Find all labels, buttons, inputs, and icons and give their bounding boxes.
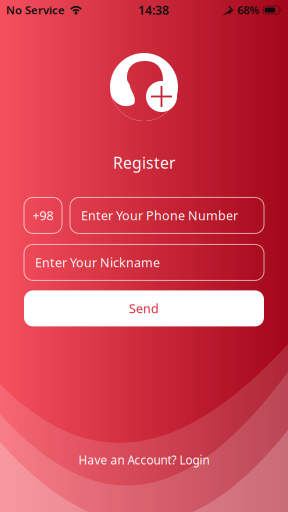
button[interactable]: Enter Your Nickname [24,244,264,280]
staticText: +98 [32,207,53,224]
staticText: No Service [6,2,65,18]
button[interactable]: +98 [24,197,62,233]
button[interactable]: Enter Your Phone Number [70,197,264,233]
button[interactable]: Have an Account? Login [62,445,225,475]
staticText: Enter Your Phone Number [81,207,238,224]
staticText: Register [113,152,175,173]
staticText: 14:38 [138,2,169,18]
staticText: 68% [237,2,259,18]
button[interactable]: Send [24,290,264,326]
staticText: Enter Your Nickname [35,254,160,271]
staticText: Have an Account? Login [78,452,209,468]
staticText: Send [129,300,159,317]
